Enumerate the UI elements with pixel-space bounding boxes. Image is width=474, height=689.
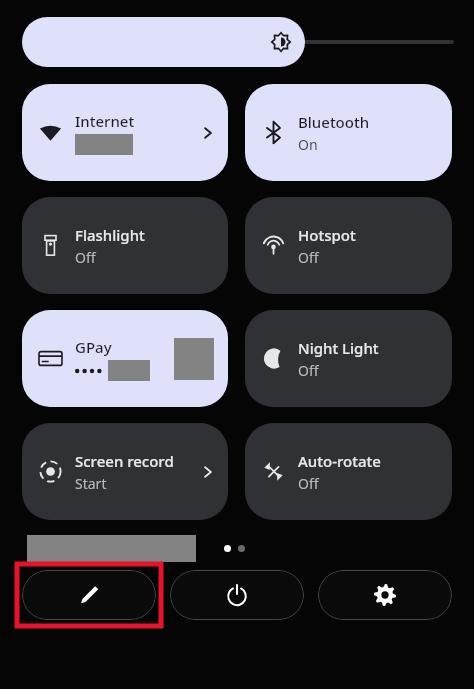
staticText: On — [298, 135, 318, 154]
staticText: GPay — [75, 337, 112, 357]
button[interactable]: Settings — [318, 570, 452, 620]
button[interactable]: Brightness — [22, 17, 454, 67]
staticText: Internet — [75, 111, 135, 131]
button[interactable]: Edit tiles — [22, 570, 156, 620]
staticText: Off — [298, 248, 319, 267]
staticText: Bluetooth — [298, 112, 370, 132]
button[interactable]: Screen record — [22, 423, 228, 520]
button[interactable]: GPay — [22, 310, 228, 407]
staticText: Night Light — [298, 338, 379, 358]
staticText: Auto-rotate — [298, 451, 381, 471]
staticText: Start — [75, 474, 107, 493]
staticText: Off — [75, 248, 96, 267]
button[interactable]: Flashlight — [22, 197, 228, 294]
staticText: Screen record — [75, 451, 174, 471]
button[interactable]: Hotspot — [245, 197, 452, 294]
staticText: Hotspot — [298, 225, 356, 245]
button[interactable]: Auto-rotate — [245, 423, 452, 520]
staticText: Flashlight — [75, 225, 145, 245]
button[interactable]: Night Light — [245, 310, 452, 407]
staticText: Off — [298, 361, 319, 380]
staticText: Off — [298, 474, 319, 493]
button[interactable]: Bluetooth — [245, 84, 452, 181]
button[interactable]: Power — [170, 570, 304, 620]
button[interactable]: Internet — [22, 84, 228, 181]
